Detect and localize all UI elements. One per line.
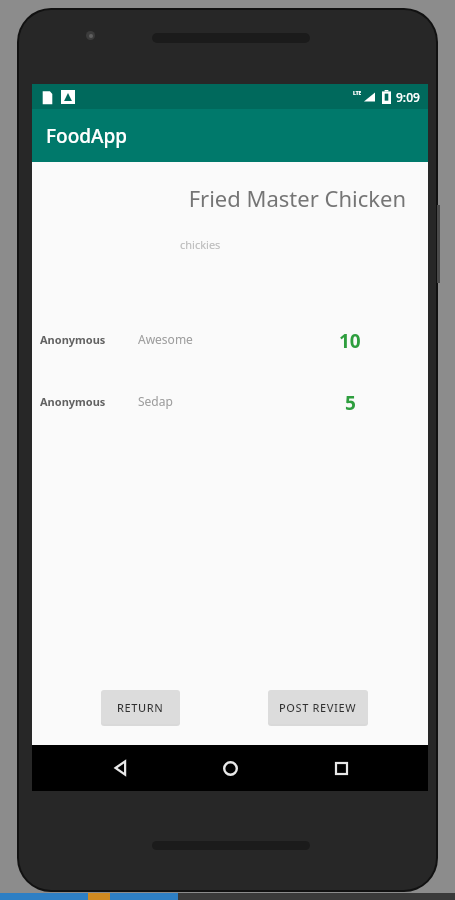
staticText: chickies: [180, 237, 221, 252]
staticText: Anonymous: [40, 332, 138, 347]
button[interactable]: Recent apps: [318, 745, 364, 791]
staticText: POST REVIEW: [279, 700, 357, 715]
staticText: RETURN: [117, 700, 164, 715]
button[interactable]: POST REVIEW: [268, 690, 368, 724]
button[interactable]: Anonymous: [32, 328, 428, 350]
button[interactable]: Home: [207, 745, 253, 791]
staticText: 9:09: [396, 89, 420, 105]
staticText: Anonymous: [40, 394, 138, 409]
staticText: Fried Master Chicken: [32, 183, 406, 213]
staticText: FoodApp: [46, 123, 128, 149]
staticText: LTE: [353, 90, 362, 97]
staticText: 5: [345, 390, 356, 412]
staticText: Awesome: [138, 331, 308, 347]
staticText: Sedap: [138, 393, 308, 409]
button[interactable]: Back: [97, 745, 143, 791]
button[interactable]: RETURN: [101, 690, 180, 724]
staticText: 10: [339, 328, 361, 350]
button[interactable]: Anonymous: [32, 390, 428, 412]
